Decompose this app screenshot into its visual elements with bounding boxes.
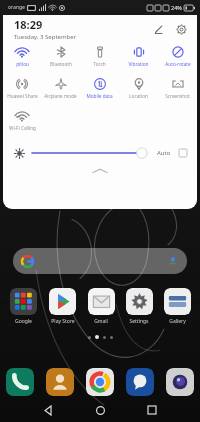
staticText: 18:29 bbox=[14, 17, 43, 32]
button[interactable]: Airplane mode bbox=[41, 75, 80, 107]
button[interactable]: Screenshot bbox=[158, 75, 197, 107]
button[interactable]: Wi-Fi Calling bbox=[3, 107, 41, 139]
staticText: Torch bbox=[93, 61, 106, 67]
staticText: Settings bbox=[129, 318, 149, 325]
button[interactable]: Brightness bbox=[32, 146, 151, 160]
button[interactable]: Location bbox=[119, 75, 158, 107]
button[interactable]: Gallery bbox=[158, 288, 196, 325]
button[interactable]: Auto-rotate bbox=[158, 43, 197, 75]
button[interactable]: Settings bbox=[120, 288, 158, 325]
staticText: Gallery bbox=[169, 318, 186, 325]
button[interactable]: Play Store bbox=[43, 288, 82, 325]
staticText: Huawei Share bbox=[7, 93, 38, 99]
staticText: Mobile data bbox=[86, 93, 113, 99]
staticText: Screenshot bbox=[165, 93, 190, 99]
button[interactable]: Back bbox=[33, 398, 63, 422]
button[interactable]: messages bbox=[126, 368, 154, 396]
staticText: Auto bbox=[157, 149, 171, 157]
button[interactable]: Home bbox=[85, 398, 115, 422]
button[interactable]: Search bbox=[13, 248, 187, 274]
staticText: Play Store bbox=[51, 318, 75, 325]
staticText: Bluetooth bbox=[50, 61, 72, 67]
button[interactable]: Torch bbox=[80, 43, 119, 75]
button[interactable]: Vibration bbox=[119, 43, 158, 75]
staticText: Gmail bbox=[94, 318, 108, 325]
staticText: Location bbox=[129, 93, 148, 99]
staticText: Wi-Fi Calling bbox=[9, 125, 36, 131]
staticText: Tuesday, 3 September bbox=[14, 33, 77, 41]
staticText: Airplane mode bbox=[44, 93, 77, 99]
button[interactable]: Google bbox=[4, 288, 43, 325]
button[interactable]: Huawei Share bbox=[3, 75, 41, 107]
button[interactable]: Bluetooth bbox=[41, 43, 80, 75]
button[interactable]: Settings bbox=[173, 21, 189, 37]
button[interactable]: phone bbox=[6, 368, 34, 396]
button[interactable]: Gmail bbox=[82, 288, 120, 325]
button[interactable]: contacts bbox=[46, 368, 74, 396]
button[interactable]: camera bbox=[166, 368, 194, 396]
staticText: pitlou bbox=[16, 61, 29, 67]
button[interactable]: Edit bbox=[150, 21, 166, 37]
staticText: Auto-rotate bbox=[165, 61, 191, 67]
button[interactable]: Collapse bbox=[3, 165, 197, 177]
button[interactable]: Mobile data bbox=[80, 75, 119, 107]
button[interactable]: pitlou bbox=[3, 43, 41, 75]
button[interactable]: chrome bbox=[86, 368, 114, 396]
staticText: 24% bbox=[171, 4, 182, 11]
staticText: Google bbox=[15, 318, 32, 325]
staticText: orange bbox=[8, 4, 25, 11]
button[interactable]: Recents bbox=[137, 398, 167, 422]
staticText: Vibration bbox=[128, 61, 149, 67]
button[interactable]: Auto brightness bbox=[177, 147, 189, 159]
